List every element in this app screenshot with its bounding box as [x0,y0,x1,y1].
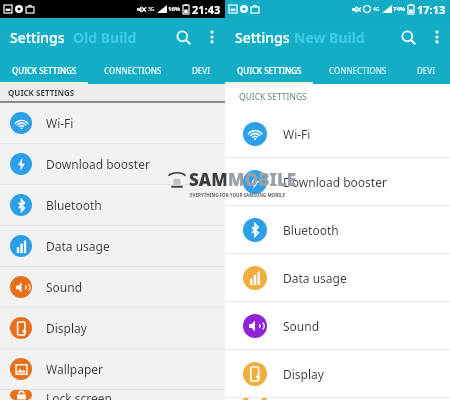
staticText: Wi-Fi [46,115,74,131]
button[interactable]: Data usage [225,254,450,301]
staticText: QUICK SETTINGS [8,87,75,98]
staticText: DEVI [192,65,211,76]
staticText: Data usage [283,270,347,286]
staticText: QUICK SETTINGS [12,65,77,76]
staticText: QUICK SETTINGS [239,91,307,103]
staticText: 4G [373,6,380,13]
button[interactable]: Wallpaper [0,349,225,389]
staticText: Sound [283,318,320,334]
staticText: 21:43 [192,2,221,17]
button[interactable]: Display [0,308,225,348]
button[interactable]: Bluetooth [0,185,225,225]
button[interactable]: Search [167,21,199,53]
button[interactable]: Download booster [225,158,450,205]
staticText: Download booster [283,174,387,190]
staticText: QUICK SETTINGS [237,65,302,76]
staticText: Settings [235,28,290,47]
staticText: Wi-Fi [283,126,311,142]
staticText: SAM [189,168,228,191]
button[interactable]: Search [392,21,424,53]
button[interactable]: Wallpaper [225,398,450,400]
button[interactable]: QUICK SETTINGS [0,56,88,84]
button[interactable]: More options [424,24,450,50]
button[interactable]: DEVI [178,56,225,84]
button[interactable]: CONNECTIONS [313,56,403,84]
button[interactable]: DEVI [403,56,450,84]
button[interactable]: Display [225,350,450,397]
staticText: Display [46,320,87,336]
staticText: Old Build [73,28,137,47]
staticText: Display [283,366,324,382]
button[interactable]: CONNECTIONS [88,56,178,84]
staticText: Sound [46,279,83,295]
staticText: Wallpaper [46,361,104,377]
staticText: CONNECTIONS [104,65,162,76]
button[interactable]: More options [199,24,225,50]
staticText: DEVI [417,65,436,76]
staticText: Lock screen [46,390,113,400]
staticText: MOBILE [228,168,297,191]
staticText: 74% [393,5,406,13]
staticText: 16% [168,5,181,13]
staticText: Bluetooth [46,197,102,213]
button[interactable]: QUICK SETTINGS [225,56,313,84]
staticText: New Build [294,28,365,47]
staticText: 17:13 [417,2,446,17]
button[interactable]: Download booster [0,144,225,184]
staticText: Bluetooth [283,222,339,238]
button[interactable]: Wi-Fi [225,110,450,157]
staticText: Download booster [46,156,150,172]
staticText: 3G [148,6,155,13]
staticText: Data usage [46,238,110,254]
button[interactable]: Sound [225,302,450,349]
staticText: CONNECTIONS [329,65,387,76]
staticText: EVERYTHING FOR YOUR SAMSUNG MOBILE [190,192,285,198]
button[interactable]: Lock screen [0,390,225,400]
button[interactable]: Bluetooth [225,206,450,253]
button[interactable]: Data usage [0,226,225,266]
staticText: Settings [10,28,65,47]
button[interactable]: Sound [0,267,225,307]
button[interactable]: Wi-Fi [0,103,225,143]
